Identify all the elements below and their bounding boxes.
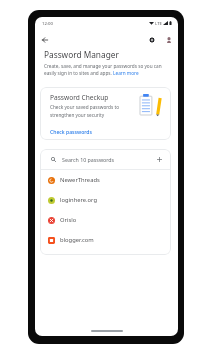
staticText: 12:00 <box>42 20 53 26</box>
staticText: loginhere.org <box>60 196 98 204</box>
staticText: Password Checkup <box>50 93 109 102</box>
button[interactable]: Search 10 passwords <box>40 149 171 169</box>
button[interactable]: blogger.com <box>40 230 171 250</box>
button[interactable]: NewerThreads <box>40 170 171 190</box>
button[interactable]: Orislo <box>40 210 171 230</box>
staticText: Orislo <box>60 216 77 224</box>
button[interactable]: Back <box>38 33 51 46</box>
button[interactable]: Check passwords <box>50 129 92 136</box>
staticText: Check your saved passwords to strengthen… <box>50 104 126 118</box>
staticText: LTE <box>155 20 162 26</box>
button[interactable]: Account <box>162 33 175 46</box>
staticText: Check passwords <box>50 129 92 136</box>
staticText: blogger.com <box>60 236 94 244</box>
staticText: NewerThreads <box>60 176 100 184</box>
button[interactable]: loginhere.org <box>40 190 171 210</box>
staticText: Create, save, and manage your passwords … <box>44 63 163 77</box>
button[interactable]: Password Checkup <box>40 87 171 140</box>
button[interactable]: Add password <box>155 155 164 164</box>
staticText: Password Manager <box>44 49 119 60</box>
button[interactable]: Settings <box>145 33 158 46</box>
staticText: Search 10 passwords <box>62 156 115 163</box>
